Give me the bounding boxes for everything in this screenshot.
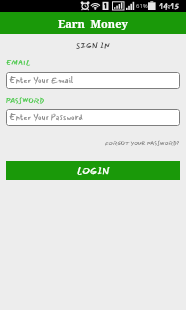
staticText: LOGIN (77, 163, 110, 178)
staticText: Earn Money (58, 16, 128, 31)
button[interactable]: LOGIN (6, 161, 180, 180)
button[interactable]: Enter Your Email (6, 72, 180, 89)
staticText: PASSWORD (6, 95, 45, 106)
staticText: Enter Your Password (9, 111, 84, 124)
staticText: 61% (136, 2, 148, 10)
staticText: SIGN IN (76, 39, 110, 52)
staticText: 14:15 (159, 0, 180, 12)
staticText: EMAIL (6, 58, 31, 68)
button[interactable]: Enter Your Password (6, 109, 180, 126)
staticText: Enter Your Email (9, 74, 74, 87)
button[interactable]: FORGOT YOUR PASSWORD? (105, 139, 180, 148)
